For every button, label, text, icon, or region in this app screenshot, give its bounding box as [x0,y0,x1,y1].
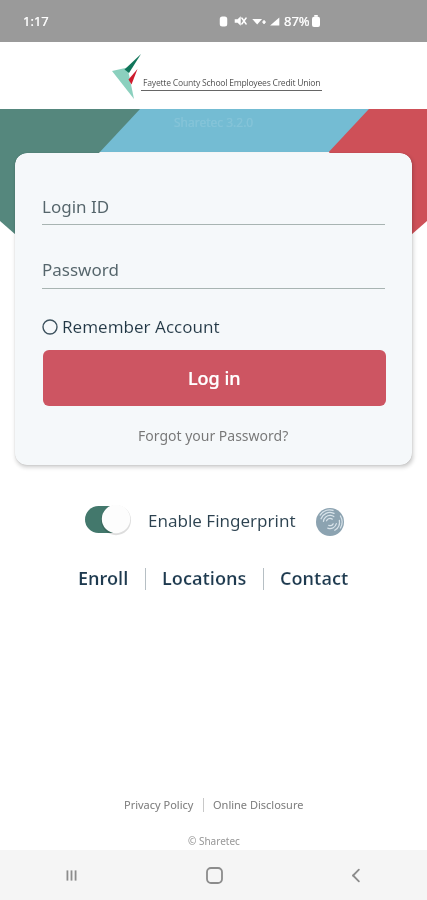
button[interactable]: Log in [43,350,386,406]
staticText: 87% [284,12,310,30]
button[interactable]: Contact [264,562,365,595]
staticText: Fayette County School Employees Credit U… [143,77,321,89]
button[interactable]: Privacy Policy [115,795,203,814]
staticText: Log in [188,366,241,391]
button[interactable]: Locations [146,562,263,595]
staticText: Enable Fingerprint [148,509,296,532]
button[interactable]: Forgot your Password? [133,421,294,450]
staticText: Sharetec 3.2.0 [174,114,254,130]
button[interactable]: Fingerprint [312,505,348,539]
button[interactable]: Enroll [62,562,145,595]
button[interactable]: Remember Account [38,311,224,342]
staticText: Login ID [42,195,110,218]
button[interactable]: Recent apps [0,850,143,900]
staticText: 1:17 [23,12,49,30]
staticText: © Sharetec [188,834,240,848]
staticText: Remember Account [62,315,220,338]
button[interactable]: Home [143,850,285,900]
staticText: Password [42,258,119,281]
button[interactable]: Online Disclosure [204,795,313,814]
button[interactable]: Back [285,850,427,900]
button[interactable]: Enable Fingerprint toggle [85,504,131,535]
